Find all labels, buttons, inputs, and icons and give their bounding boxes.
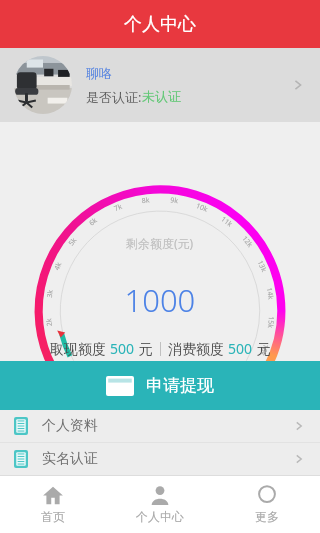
staticText: 元 — [253, 339, 271, 358]
staticText: 500 — [110, 339, 135, 358]
staticText: 未认证 — [142, 88, 181, 104]
other: 更多 — [256, 484, 278, 506]
staticText: 消费额度 — [168, 339, 228, 358]
button[interactable]: 个人中心 — [106, 475, 213, 533]
staticText: 更多 — [255, 509, 279, 524]
staticText: 500 — [228, 339, 253, 358]
staticText: 聊咯 — [86, 65, 112, 81]
staticText: 个人中心 — [124, 13, 196, 36]
other: 个人中心 — [149, 484, 171, 506]
button[interactable]: 聊咯 — [0, 48, 320, 122]
button[interactable]: 实名认证 — [0, 443, 320, 475]
staticText: 个人资料 — [42, 417, 292, 435]
button[interactable]: 更多 — [213, 475, 320, 533]
button[interactable]: 申请提现 — [0, 361, 320, 410]
staticText: 申请提现 — [146, 375, 214, 396]
button[interactable]: 个人资料 — [0, 410, 320, 442]
other: 首页 — [42, 484, 64, 506]
staticText: 取现额度 — [50, 339, 110, 358]
staticText: 实名认证 — [42, 450, 292, 468]
button[interactable]: 首页 — [0, 475, 106, 533]
staticText: 首页 — [41, 509, 65, 524]
staticText: 是否认证: — [86, 88, 142, 106]
staticText: 个人中心 — [136, 509, 184, 524]
staticText: 元 — [135, 339, 153, 358]
